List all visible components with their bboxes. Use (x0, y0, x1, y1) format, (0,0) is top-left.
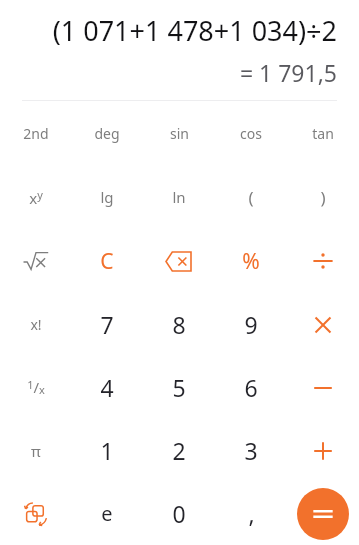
staticText: 7 (100, 309, 114, 340)
button[interactable]: 2 (143, 419, 215, 482)
button[interactable]: Multiply (287, 293, 359, 356)
button[interactable]: deg (71, 101, 143, 165)
staticText: lg (100, 187, 114, 207)
button[interactable]: ln (143, 165, 215, 229)
button[interactable]: Square root (0, 229, 71, 293)
staticText: = 1 791,5 (239, 57, 337, 88)
button[interactable]: π (0, 419, 71, 482)
staticText: 4 (100, 372, 114, 403)
staticText: , (248, 498, 255, 529)
button[interactable]: lg (71, 165, 143, 229)
staticText: 2nd (23, 124, 49, 143)
staticText: (1 071+1 478+1 034)÷2 (52, 12, 337, 49)
staticText: C (100, 247, 114, 276)
staticText: 3 (244, 435, 258, 466)
staticText: tan (312, 124, 334, 143)
staticText: 9 (244, 309, 258, 340)
button[interactable]: 6 (215, 356, 287, 419)
staticText: π (31, 441, 41, 461)
staticText: 0 (172, 498, 186, 529)
staticText: sin (170, 124, 189, 143)
button[interactable]: 4 (71, 356, 143, 419)
staticText: e (101, 500, 113, 527)
button[interactable]: Backspace (143, 229, 215, 293)
staticText: 5 (172, 372, 186, 403)
staticText: % (242, 247, 260, 276)
button[interactable]: cos (215, 101, 287, 165)
staticText: 2 (172, 435, 186, 466)
button[interactable]: % (215, 229, 287, 293)
button[interactable]: Minus (287, 356, 359, 419)
staticText: ln (172, 187, 186, 207)
button[interactable]: sin (143, 101, 215, 165)
button[interactable]: x! (0, 293, 71, 356)
button[interactable]: ) (287, 165, 359, 229)
button[interactable]: Unit converter (0, 482, 71, 545)
button[interactable]: Equals (297, 488, 349, 540)
staticText: 1/x (27, 377, 45, 398)
button[interactable]: , (215, 482, 287, 545)
button[interactable]: ( (215, 165, 287, 229)
button[interactable]: 2nd (0, 101, 71, 165)
button[interactable]: 9 (215, 293, 287, 356)
staticText: 8 (172, 309, 186, 340)
button[interactable]: Plus (287, 419, 359, 482)
button[interactable]: One over x (0, 356, 71, 419)
button[interactable]: Divide (287, 229, 359, 293)
staticText: ( (248, 186, 254, 209)
staticText: ) (320, 186, 326, 209)
staticText: 1 (100, 435, 114, 466)
button[interactable]: 3 (215, 419, 287, 482)
button[interactable]: 5 (143, 356, 215, 419)
button[interactable]: e (71, 482, 143, 545)
staticText: x! (30, 315, 42, 334)
staticText: deg (94, 124, 120, 143)
staticText: xy (29, 187, 43, 208)
staticText: cos (240, 124, 262, 143)
staticText: 6 (244, 372, 258, 403)
button[interactable]: C (71, 229, 143, 293)
button[interactable]: 0 (143, 482, 215, 545)
button[interactable]: tan (287, 101, 359, 165)
button[interactable]: 7 (71, 293, 143, 356)
button[interactable]: x to the power of y (0, 165, 71, 229)
button[interactable]: 8 (143, 293, 215, 356)
button[interactable]: 1 (71, 419, 143, 482)
